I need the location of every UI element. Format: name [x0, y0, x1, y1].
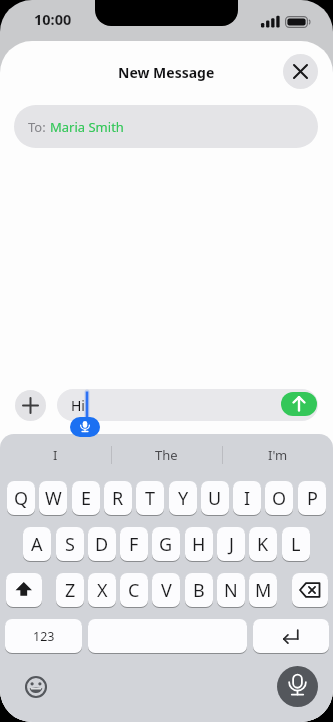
staticText: E [81, 486, 92, 511]
staticText: New Message [118, 63, 215, 82]
staticText: Hi [71, 396, 85, 415]
button[interactable]: A [23, 527, 51, 561]
button[interactable]: S [56, 527, 84, 561]
button[interactable]: 123 [5, 619, 82, 653]
button[interactable]: N [217, 573, 245, 607]
button[interactable]: Q [7, 481, 35, 515]
button[interactable]: B [185, 573, 213, 607]
staticText: 10:00 [34, 9, 72, 29]
button[interactable]: To: [14, 105, 318, 148]
staticText: G [159, 532, 173, 557]
button[interactable] [253, 619, 329, 653]
button[interactable]: C [120, 573, 148, 607]
button[interactable]: K [249, 527, 277, 561]
button[interactable] [277, 666, 318, 707]
staticText: C [128, 578, 140, 603]
button[interactable]: T [136, 481, 164, 515]
button[interactable] [25, 676, 47, 698]
button[interactable] [88, 619, 247, 653]
button[interactable]: Z [56, 573, 84, 607]
button[interactable] [6, 573, 42, 607]
button[interactable]: J [217, 527, 245, 561]
button[interactable]: H [185, 527, 213, 561]
staticText: Maria Smith [50, 118, 124, 136]
button[interactable]: L [282, 527, 310, 561]
staticText: P [307, 486, 318, 511]
staticText: R [112, 486, 124, 511]
button[interactable] [57, 389, 318, 421]
button[interactable]: E [72, 481, 100, 515]
button[interactable]: F [120, 527, 148, 561]
button[interactable] [281, 392, 317, 416]
staticText: J [229, 532, 234, 557]
staticText: V [161, 578, 172, 603]
staticText: O [272, 486, 287, 511]
staticText: Y [178, 486, 189, 511]
staticText: L [291, 532, 301, 557]
button[interactable]: O [265, 481, 293, 515]
staticText: I [53, 446, 58, 464]
button[interactable]: U [201, 481, 229, 515]
button[interactable]: Y [169, 481, 197, 515]
button[interactable]: V [152, 573, 180, 607]
staticText: F [129, 532, 139, 557]
staticText: To: [28, 118, 50, 136]
staticText: N [224, 578, 238, 603]
button[interactable]: X [88, 573, 116, 607]
staticText: U [208, 486, 222, 511]
button[interactable]: W [39, 481, 67, 515]
staticText: S [65, 532, 75, 557]
button[interactable] [292, 573, 328, 607]
staticText: K [257, 532, 269, 557]
staticText: I'm [268, 446, 288, 464]
staticText: D [95, 532, 109, 557]
staticText: W [45, 486, 62, 511]
button[interactable]: I [233, 481, 261, 515]
button[interactable] [15, 390, 46, 421]
staticText: Z [65, 578, 76, 603]
button[interactable]: M [249, 573, 277, 607]
button[interactable]: P [298, 481, 326, 515]
staticText: 123 [33, 628, 55, 645]
button[interactable] [283, 54, 318, 89]
staticText: I [244, 486, 251, 511]
staticText: H [192, 532, 206, 557]
staticText: M [255, 578, 272, 603]
button[interactable]: R [104, 481, 132, 515]
staticText: B [193, 578, 205, 603]
staticText: T [145, 486, 156, 511]
button[interactable]: D [88, 527, 116, 561]
staticText: X [97, 578, 108, 603]
button[interactable]: G [152, 527, 180, 561]
staticText: A [31, 532, 43, 557]
staticText: Q [14, 486, 29, 511]
staticText: The [155, 446, 178, 464]
